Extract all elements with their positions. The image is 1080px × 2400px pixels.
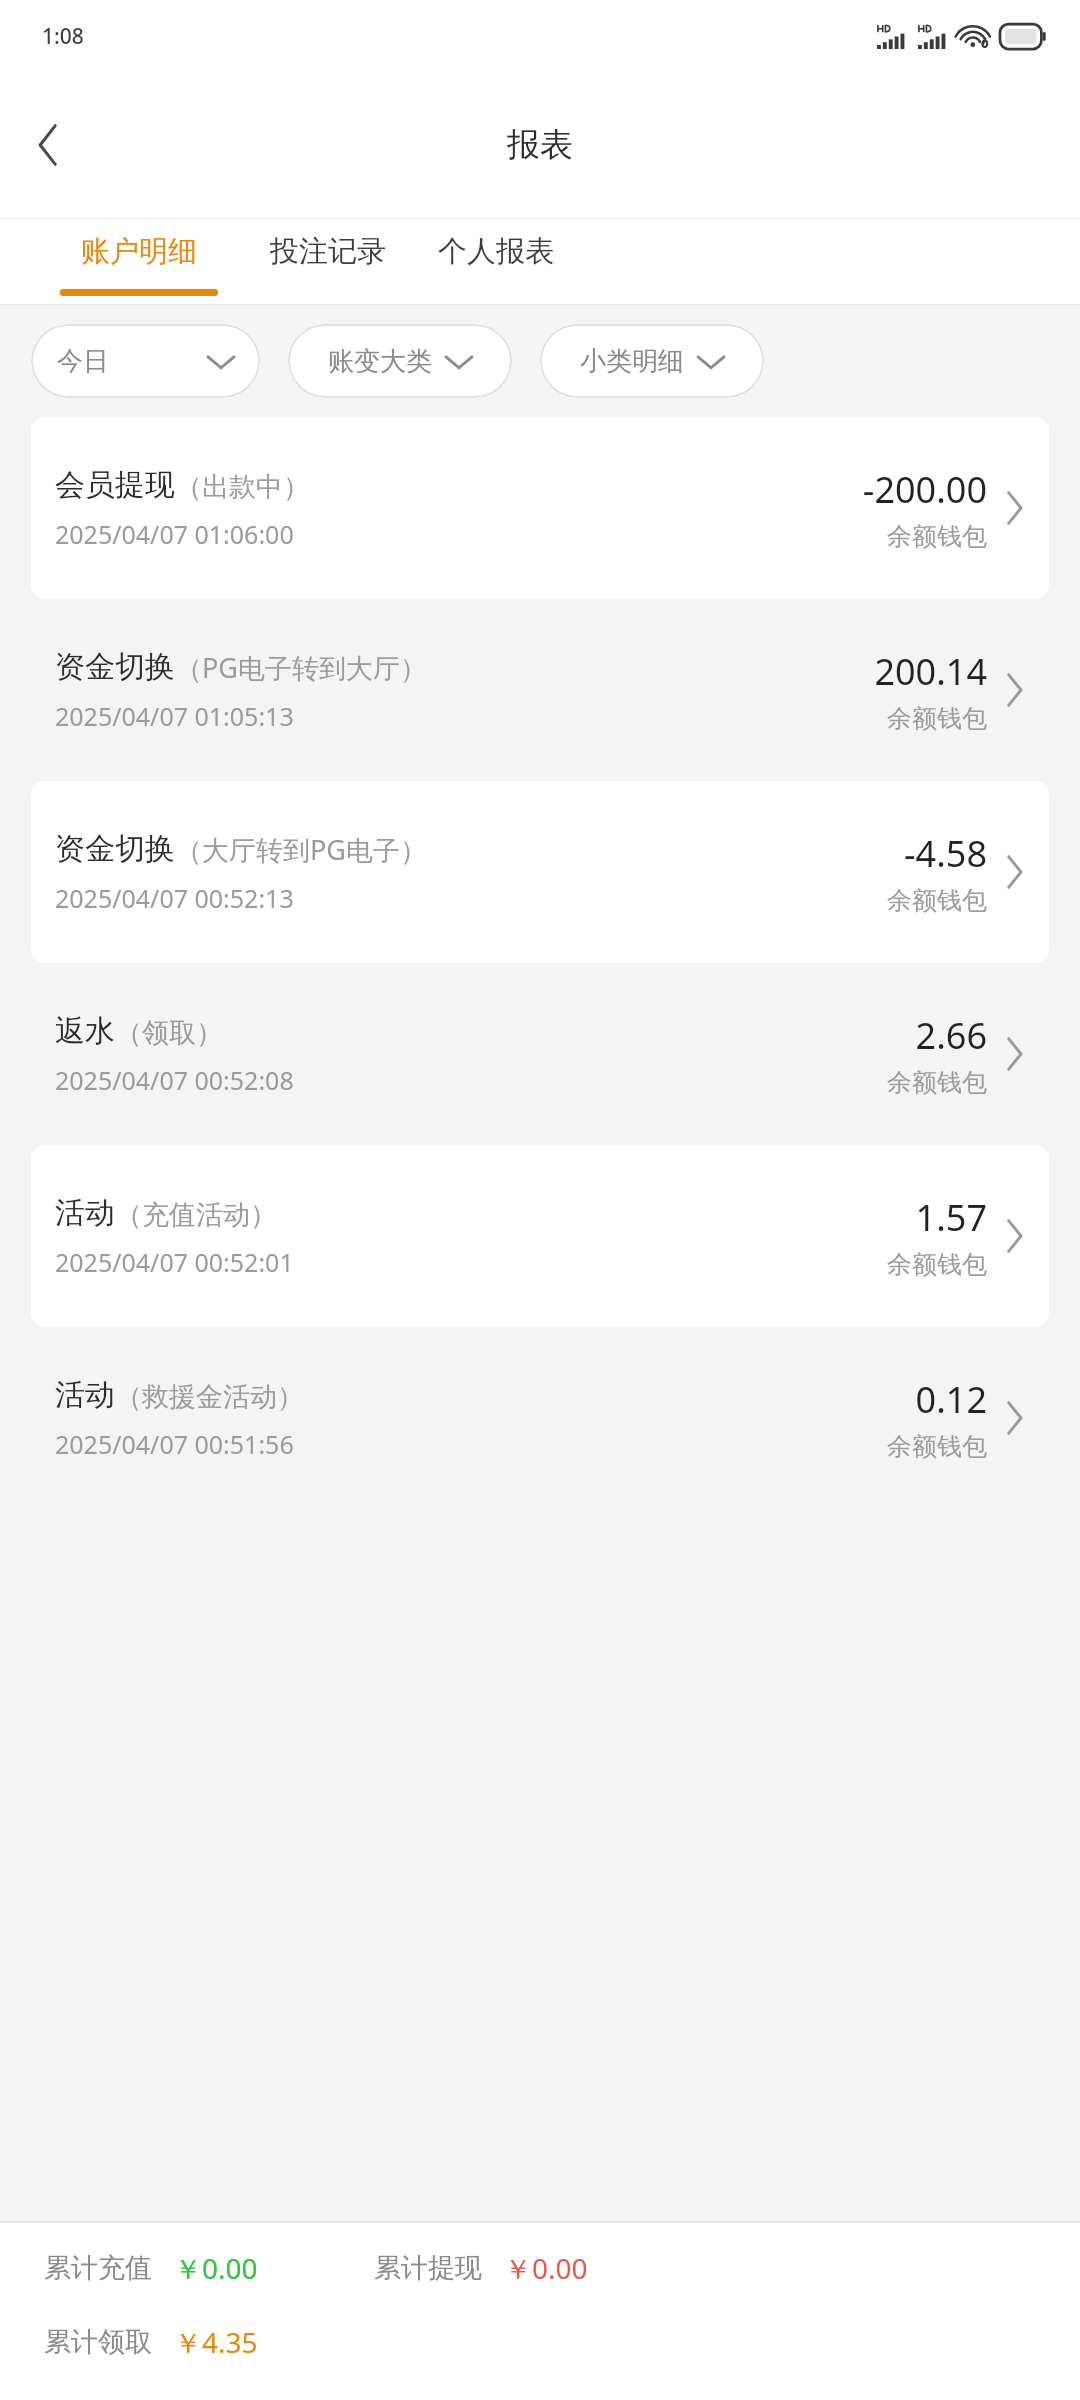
staticText: 报表 xyxy=(507,124,573,166)
staticText: 余额钱包 xyxy=(887,885,987,916)
staticText: 个人报表 xyxy=(438,233,554,270)
staticText: 资金切换 xyxy=(55,830,175,868)
staticText: 余额钱包 xyxy=(887,703,987,734)
staticText: 资金切换 xyxy=(55,648,175,686)
staticText: 余额钱包 xyxy=(887,1067,987,1098)
staticText: ￥4.35 xyxy=(174,2323,258,2361)
staticText: 0.12 xyxy=(915,1375,987,1424)
staticText: 2025/04/07 00:52:13 xyxy=(55,881,294,915)
staticText: 活动 xyxy=(55,1194,115,1232)
staticText: -4.58 xyxy=(903,829,987,878)
staticText: 2025/04/07 01:05:13 xyxy=(55,699,294,733)
staticText: ￥0.00 xyxy=(504,2249,588,2287)
button[interactable]: 账变大类 xyxy=(288,324,512,398)
staticText: （PG电子转到大厅） xyxy=(175,649,427,686)
staticText: 账户明细 xyxy=(81,233,197,270)
button[interactable]: Back xyxy=(0,97,96,193)
button[interactable]: 会员提现 xyxy=(31,417,1049,599)
staticText: 2025/04/07 01:06:00 xyxy=(55,517,294,551)
staticText: 活动 xyxy=(55,1376,115,1414)
button[interactable]: 今日 xyxy=(31,324,260,398)
staticText: 账变大类 xyxy=(328,345,432,378)
staticText: （救援金活动） xyxy=(115,1380,304,1414)
button[interactable]: 投注记录 xyxy=(270,219,386,304)
staticText: （充值活动） xyxy=(115,1198,277,1232)
button[interactable]: 返水 xyxy=(31,963,1049,1145)
staticText: 2025/04/07 00:51:56 xyxy=(55,1427,294,1461)
staticText: （领取） xyxy=(115,1016,223,1050)
button[interactable]: 资金切换 xyxy=(31,599,1049,781)
staticText: （大厅转到PG电子） xyxy=(175,831,427,868)
staticText: 1.57 xyxy=(915,1193,987,1242)
staticText: 余额钱包 xyxy=(887,521,987,552)
staticText: 累计领取 xyxy=(44,2325,152,2359)
button[interactable]: 资金切换 xyxy=(31,781,1049,963)
staticText: 余额钱包 xyxy=(887,1249,987,1280)
staticText: （出款中） xyxy=(175,470,310,504)
button[interactable]: 小类明细 xyxy=(540,324,764,398)
button[interactable]: 活动 xyxy=(31,1145,1049,1327)
staticText: 今日 xyxy=(57,345,109,378)
button[interactable]: 账户明细 xyxy=(60,219,218,304)
staticText: 小类明细 xyxy=(580,345,684,378)
staticText: 1:08 xyxy=(42,22,84,51)
button[interactable]: 活动 xyxy=(31,1327,1049,1509)
staticText: 2025/04/07 00:52:01 xyxy=(55,1245,294,1279)
staticText: 累计充值 xyxy=(44,2251,152,2285)
staticText: 累计提现 xyxy=(374,2251,482,2285)
staticText: 余额钱包 xyxy=(887,1431,987,1462)
button[interactable]: 个人报表 xyxy=(438,219,554,304)
staticText: 2.66 xyxy=(915,1011,987,1060)
staticText: 200.14 xyxy=(874,647,987,696)
staticText: 返水 xyxy=(55,1012,115,1050)
staticText: 投注记录 xyxy=(270,233,386,270)
staticText: 会员提现 xyxy=(55,466,175,504)
staticText: 2025/04/07 00:52:08 xyxy=(55,1063,294,1097)
staticText: -200.00 xyxy=(862,465,987,514)
staticText: ￥0.00 xyxy=(174,2249,258,2287)
